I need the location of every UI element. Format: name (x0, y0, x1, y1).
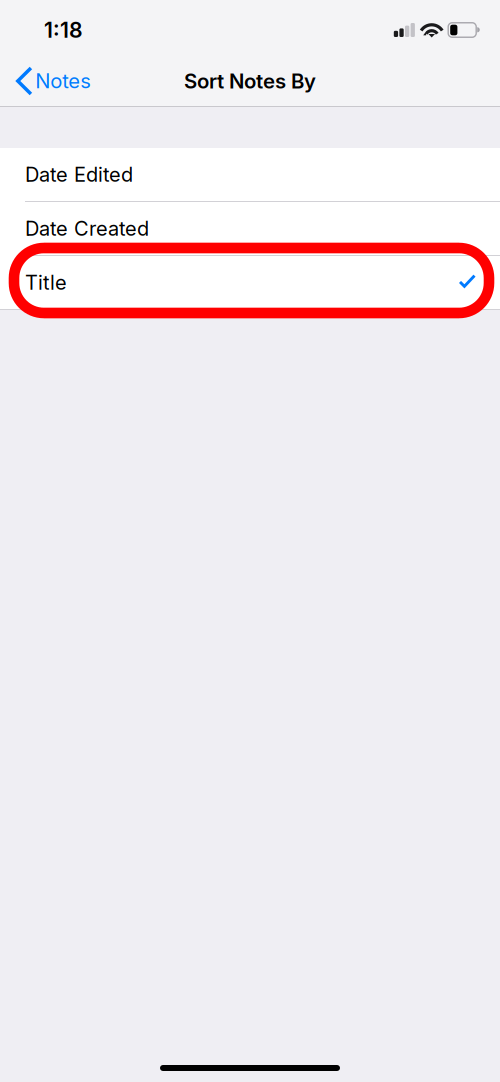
staticText: 1:18 (44, 17, 83, 43)
button[interactable]: Notes (0, 59, 101, 103)
staticText: Date Edited (25, 162, 133, 187)
staticText: Notes (35, 69, 91, 93)
staticText: Sort Notes By (184, 69, 316, 93)
button[interactable]: Title (0, 256, 500, 309)
staticText: Title (25, 270, 67, 295)
button[interactable]: Date Created (0, 202, 500, 255)
staticText: Date Created (25, 216, 149, 241)
button[interactable]: Date Edited (0, 148, 500, 201)
